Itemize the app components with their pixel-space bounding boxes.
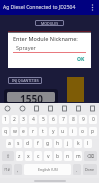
- staticText: p: [91, 128, 95, 135]
- button[interactable]: v: [44, 151, 52, 161]
- staticText: x: [27, 153, 30, 160]
- button[interactable]: 5: [39, 115, 47, 124]
- button[interactable]: m: [74, 151, 82, 161]
- button[interactable]: Voice input: [57, 103, 71, 114]
- button[interactable]: ?1#: [2, 164, 12, 175]
- staticText: z: [18, 153, 21, 160]
- staticText: 9: [82, 116, 85, 123]
- staticText: q: [4, 128, 8, 135]
- button[interactable]: h: [54, 139, 62, 148]
- staticText: a: [8, 140, 11, 147]
- button[interactable]: Translate: [43, 103, 57, 114]
- staticText: 0: [92, 116, 95, 123]
- button[interactable]: 0: [89, 115, 97, 124]
- button[interactable]: q: [2, 127, 9, 136]
- staticText: Sprayer: [16, 44, 36, 51]
- staticText: 3: [22, 116, 25, 123]
- staticText: y: [52, 128, 55, 135]
- staticText: i: [72, 128, 74, 135]
- button[interactable]: More options: [88, 3, 97, 12]
- staticText: 7: [62, 116, 65, 123]
- staticText: 2: [13, 116, 16, 123]
- button[interactable]: g: [44, 139, 52, 148]
- staticText: 1: [4, 116, 7, 123]
- staticText: Done: [85, 167, 95, 172]
- button[interactable]: ,: [14, 164, 22, 175]
- staticText: ?1#: [4, 167, 10, 172]
- button[interactable]: y: [49, 127, 57, 136]
- button[interactable]: 1: [2, 115, 9, 124]
- button[interactable]: p: [89, 127, 97, 136]
- button[interactable]: 3: [20, 115, 27, 124]
- staticText: MODULES: [41, 21, 59, 26]
- staticText: 1550: [20, 92, 43, 102]
- button[interactable]: u: [59, 127, 67, 136]
- button[interactable]: 7: [59, 115, 67, 124]
- button[interactable]: Settings: [71, 103, 85, 114]
- staticText: r: [32, 128, 35, 135]
- staticText: .: [76, 167, 78, 173]
- staticText: v: [47, 153, 50, 160]
- staticText: b: [56, 153, 60, 160]
- button[interactable]: .: [73, 164, 81, 175]
- button[interactable]: l: [84, 139, 92, 148]
- staticText: g: [46, 140, 50, 147]
- button[interactable]: a: [6, 139, 13, 148]
- staticText: INJ QUANTITIES: [12, 78, 39, 83]
- button[interactable]: OK: [74, 55, 87, 63]
- staticText: u: [61, 128, 65, 135]
- button[interactable]: s: [15, 139, 22, 148]
- button[interactable]: f: [34, 139, 42, 148]
- staticText: ⇧: [6, 153, 11, 159]
- staticText: w: [13, 128, 17, 135]
- button[interactable]: 9: [79, 115, 87, 124]
- button[interactable]: d: [24, 139, 32, 148]
- staticText: Enter Module Nickname:: [13, 35, 78, 42]
- button[interactable]: k: [74, 139, 82, 148]
- button[interactable]: 2: [11, 115, 18, 124]
- staticText: j: [67, 140, 69, 147]
- button[interactable]: Done: [83, 164, 97, 175]
- button[interactable]: e: [20, 127, 27, 136]
- button[interactable]: i: [69, 127, 77, 136]
- button[interactable]: o: [79, 127, 87, 136]
- button[interactable]: 4: [29, 115, 37, 124]
- staticText: OK: [77, 56, 85, 63]
- staticText: ,: [17, 167, 19, 173]
- button[interactable]: t: [39, 127, 47, 136]
- button[interactable]: b: [54, 151, 62, 161]
- button[interactable]: j: [64, 139, 72, 148]
- staticText: k: [77, 140, 80, 147]
- staticText: m: [76, 153, 81, 160]
- staticText: English (US): [38, 167, 58, 172]
- staticText: o: [81, 128, 85, 135]
- button[interactable]: c: [34, 151, 42, 161]
- button[interactable]: English (US): [24, 164, 71, 175]
- button[interactable]: Clipboard: [29, 103, 43, 114]
- button[interactable]: z: [16, 151, 23, 161]
- staticText: Ag Diesel Connected to JD2504: [3, 4, 76, 11]
- button[interactable]: MODULES: [35, 20, 64, 26]
- button[interactable]: Collapse: [85, 103, 99, 114]
- staticText: 8: [72, 116, 75, 123]
- button[interactable]: r: [29, 127, 37, 136]
- staticText: h: [56, 140, 60, 147]
- staticText: d: [26, 140, 30, 147]
- button[interactable]: 6: [49, 115, 57, 124]
- staticText: c: [37, 153, 40, 160]
- staticText: n: [66, 153, 70, 160]
- staticText: 5: [42, 116, 45, 123]
- button[interactable]: n: [64, 151, 72, 161]
- button[interactable]: ⌫: [84, 151, 97, 161]
- staticText: e: [22, 128, 25, 135]
- staticText: s: [17, 140, 20, 147]
- button[interactable]: INJ QUANTITIES: [8, 77, 42, 84]
- button[interactable]: w: [11, 127, 18, 136]
- button[interactable]: x: [25, 151, 32, 161]
- staticText: 6: [52, 116, 55, 123]
- staticText: 4: [32, 116, 35, 123]
- button[interactable]: 8: [69, 115, 77, 124]
- button[interactable]: Recent: [0, 103, 15, 114]
- button[interactable]: Emoji: [15, 103, 29, 114]
- button[interactable]: ⇧: [2, 151, 14, 161]
